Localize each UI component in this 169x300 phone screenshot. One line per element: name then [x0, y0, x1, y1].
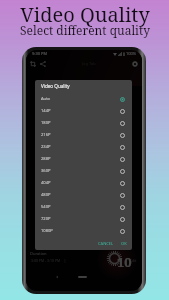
staticText: Video Quality — [20, 1, 150, 28]
staticText: 10 — [117, 253, 132, 271]
button[interactable]: 288P — [35, 153, 132, 165]
staticText: Video Quality — [41, 83, 70, 89]
staticText: 100% — [126, 51, 137, 56]
staticText: Select different quality — [20, 22, 150, 38]
button[interactable]: 404P — [35, 177, 132, 189]
button[interactable]: CANCEL — [96, 240, 116, 247]
staticText: 216P — [41, 132, 51, 138]
staticText: 288P — [41, 156, 51, 162]
button[interactable]: 360P — [35, 165, 132, 177]
staticText: 3:00 PM - 3:10 PM — [31, 258, 61, 263]
staticText: 144P — [41, 108, 51, 114]
button[interactable]: 540P — [35, 201, 132, 213]
button[interactable]: 216P — [35, 129, 132, 141]
button[interactable]: Share — [38, 59, 48, 69]
button[interactable]: 480P — [35, 189, 132, 201]
button[interactable]: OK — [119, 240, 129, 247]
staticText: 360P — [41, 168, 51, 174]
button[interactable]: 720P — [35, 213, 132, 225]
button[interactable]: Auto — [35, 93, 132, 105]
button[interactable]: 1080P — [35, 225, 132, 237]
staticText: 9:30 PM — [32, 51, 48, 56]
staticText: 480P — [41, 192, 51, 198]
button[interactable]: Home — [78, 276, 87, 278]
staticText: 540P — [41, 204, 51, 210]
button[interactable]: Back — [53, 273, 61, 281]
button[interactable]: 144P — [35, 105, 132, 117]
staticText: 720P — [41, 216, 51, 222]
staticText: Edit — [130, 258, 137, 263]
button[interactable]: Crop — [28, 59, 38, 69]
staticText: 180P — [41, 120, 51, 126]
button[interactable]: 180P — [35, 117, 132, 129]
staticText: Duration — [30, 251, 47, 256]
staticText: 234P — [41, 144, 51, 150]
staticText: 404P — [41, 180, 51, 186]
button[interactable]: 234P — [35, 141, 132, 153]
staticText: Auto — [41, 96, 51, 102]
button[interactable]: Settings — [130, 59, 140, 69]
staticText: Jog Tab — [82, 61, 96, 66]
staticText: 1080P — [41, 228, 53, 234]
